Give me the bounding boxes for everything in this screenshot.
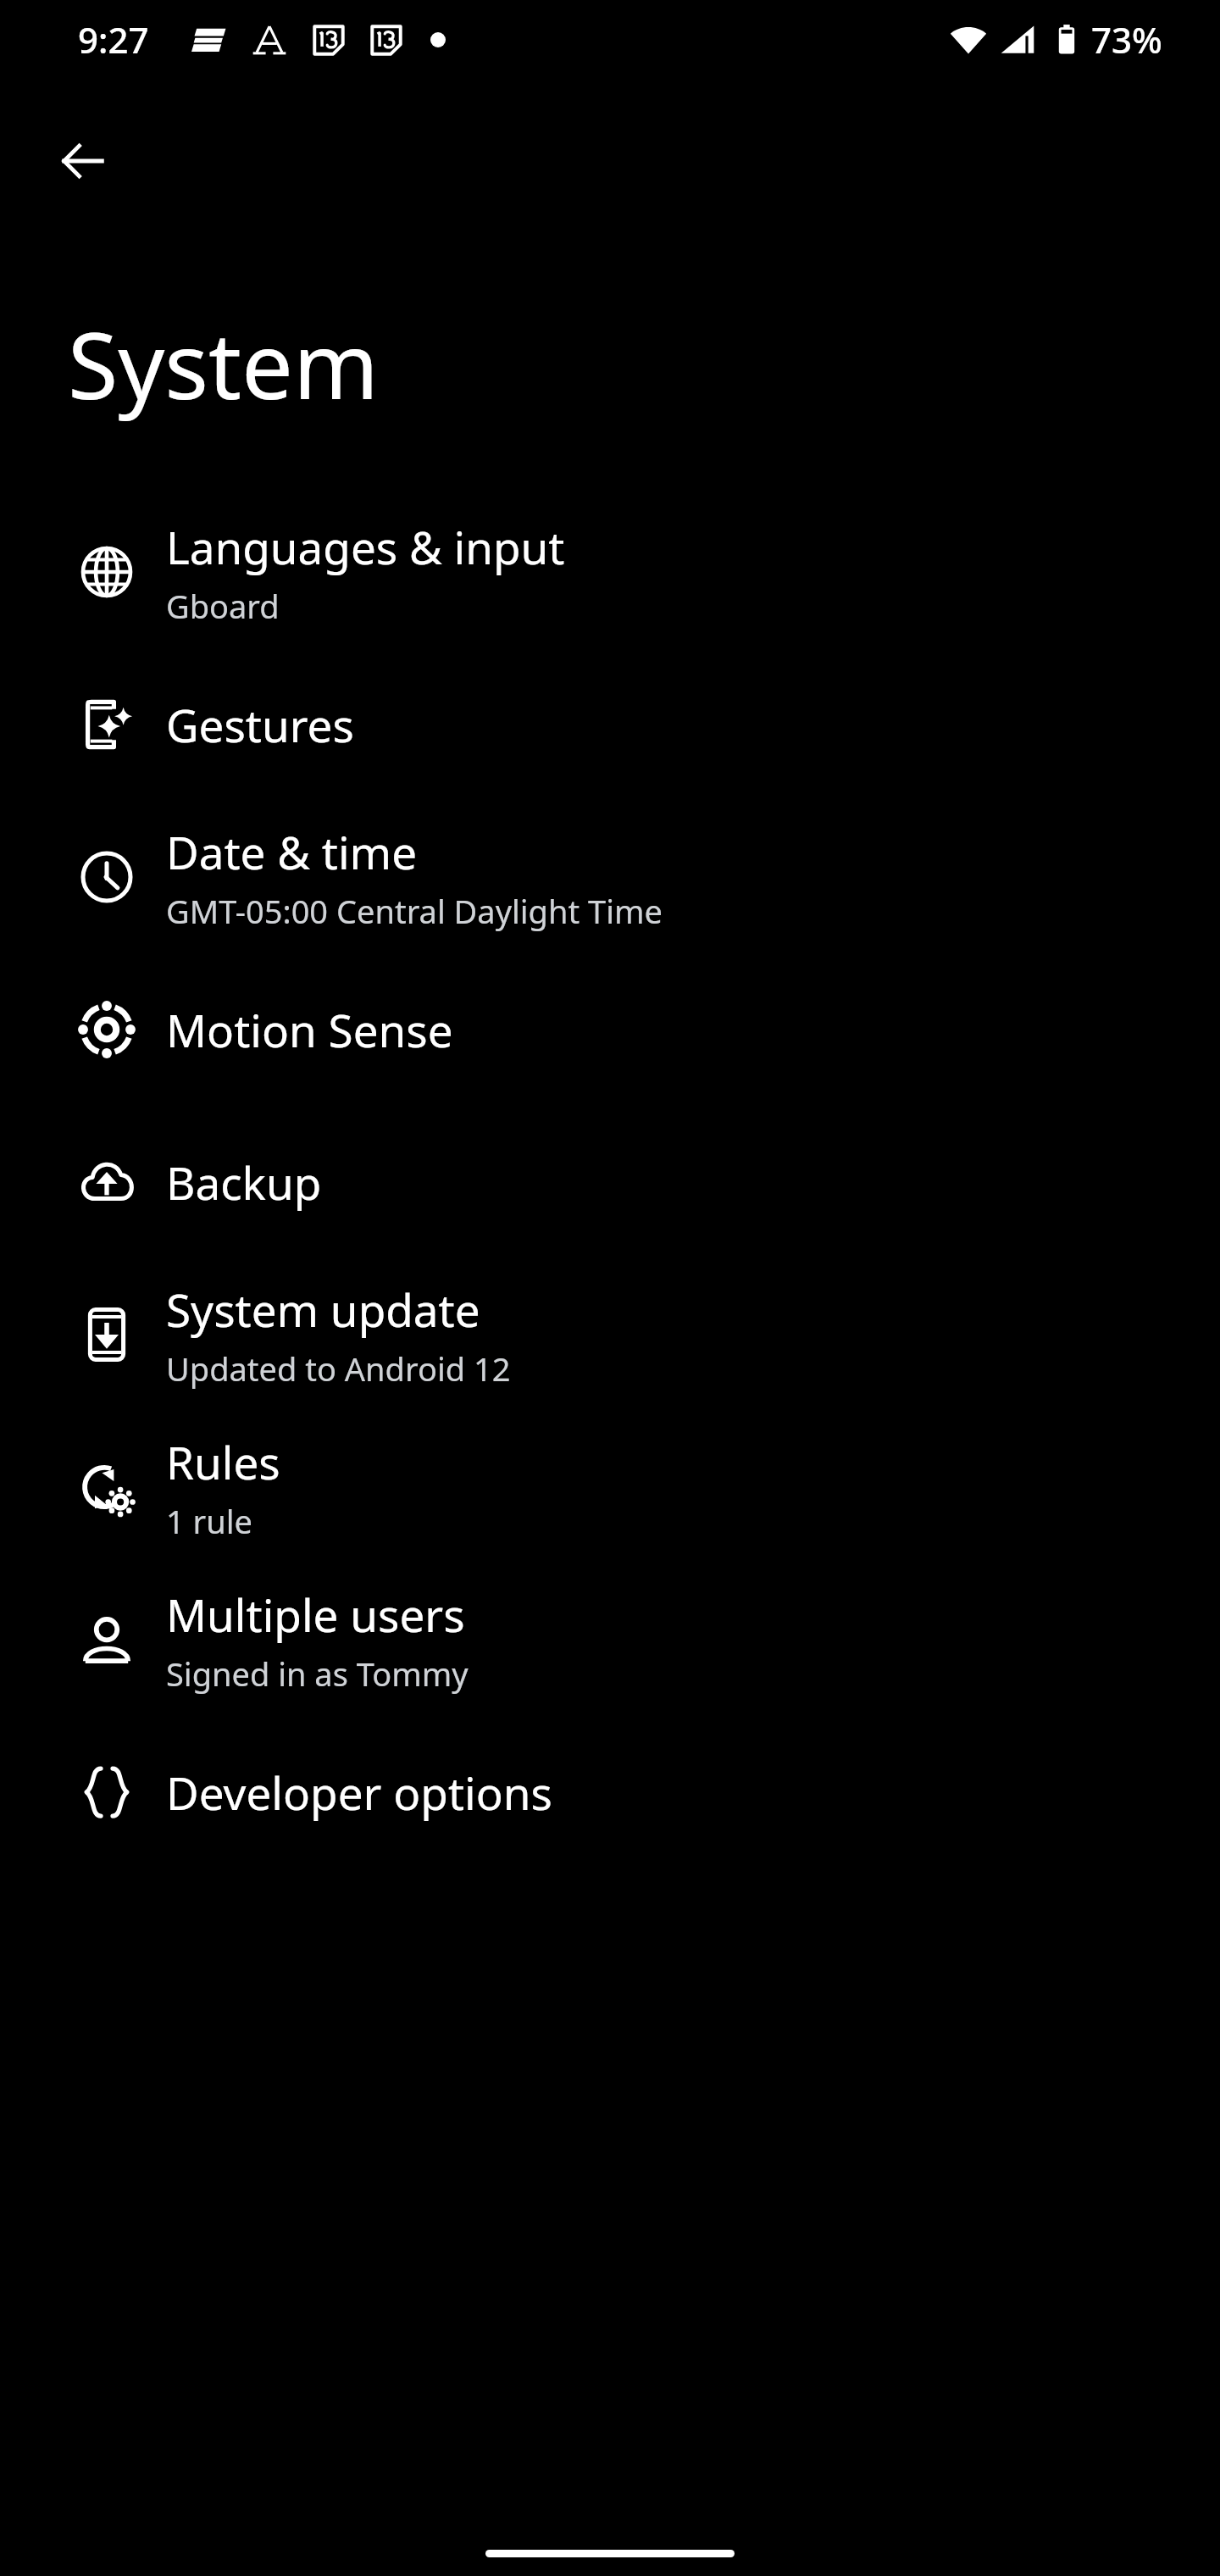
button[interactable]: Gestures <box>0 648 1220 801</box>
button[interactable]: Rules <box>0 1411 1220 1563</box>
staticText: Multiple users <box>166 1584 465 1645</box>
button[interactable]: Multiple users <box>0 1563 1220 1716</box>
staticText: Gestures <box>166 694 354 755</box>
button[interactable]: Back <box>53 130 114 192</box>
staticText: Date & time <box>166 821 418 882</box>
staticText: System <box>68 302 379 426</box>
staticText: Signed in as Tommy <box>166 1652 469 1696</box>
button[interactable]: Motion Sense <box>0 953 1220 1106</box>
staticText: Updated to Android 12 <box>166 1346 511 1391</box>
staticText: Motion Sense <box>166 999 453 1060</box>
staticText: 73% <box>1091 15 1162 64</box>
staticText: Languages & input <box>166 516 565 577</box>
staticText: Backup <box>166 1152 322 1213</box>
staticText: Rules <box>166 1431 280 1492</box>
button[interactable]: Developer options <box>0 1716 1220 1868</box>
button[interactable]: Date & time <box>0 801 1220 953</box>
staticText: Developer options <box>166 1762 552 1823</box>
staticText: System update <box>166 1279 480 1340</box>
staticText: 1 rule <box>166 1499 253 1543</box>
button[interactable]: System update <box>0 1258 1220 1411</box>
button[interactable]: Languages & input <box>0 496 1220 648</box>
staticText: 9:27 <box>78 15 149 64</box>
staticText: Gboard <box>166 584 280 628</box>
button[interactable]: Backup <box>0 1106 1220 1258</box>
staticText: GMT-05:00 Central Daylight Time <box>166 889 663 933</box>
